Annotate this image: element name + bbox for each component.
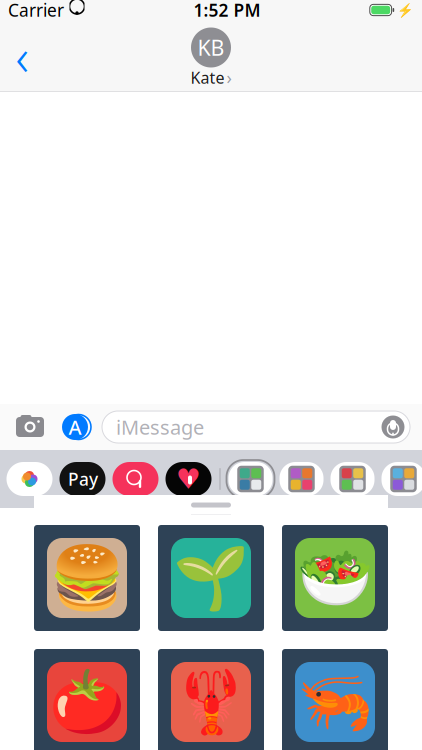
button[interactable]: Shrimp sticker bbox=[282, 649, 388, 750]
staticText: 🥗 bbox=[297, 543, 373, 613]
staticText: 1:52 PM bbox=[193, 0, 260, 21]
button[interactable]: Lobster sticker bbox=[158, 649, 264, 750]
button[interactable]: Kate bbox=[190, 69, 231, 85]
button[interactable]: Peas sticker bbox=[158, 525, 264, 631]
button[interactable]: Sticker pack bbox=[381, 462, 422, 496]
staticText: 🍔 bbox=[49, 543, 125, 613]
staticText: 🍅 bbox=[49, 667, 125, 737]
button[interactable]: App Store bbox=[58, 410, 92, 444]
button[interactable]: Burger sticker bbox=[34, 525, 140, 631]
staticText: ⚡ bbox=[397, 2, 414, 18]
staticText: › bbox=[226, 66, 231, 89]
staticText: ‹ bbox=[15, 22, 28, 90]
staticText: A bbox=[68, 414, 81, 440]
button[interactable] bbox=[59, 462, 105, 496]
staticText: Carrier bbox=[8, 0, 64, 21]
staticText: Pay bbox=[68, 467, 98, 490]
button[interactable]: Salad sticker bbox=[282, 525, 388, 631]
button[interactable] bbox=[112, 462, 158, 496]
staticText: ♥ bbox=[176, 463, 201, 495]
button[interactable]: Sticker pack bbox=[228, 462, 272, 496]
staticText: 🌱 bbox=[173, 543, 249, 613]
button[interactable]: ♥ bbox=[165, 462, 211, 496]
button[interactable]: Back bbox=[0, 34, 44, 78]
button[interactable]: Tomato sticker bbox=[34, 649, 140, 750]
staticText: 🦞 bbox=[173, 667, 249, 737]
button[interactable]: Sticker pack bbox=[330, 462, 374, 496]
button[interactable]: Camera bbox=[12, 410, 48, 444]
button[interactable]: KB bbox=[189, 26, 233, 68]
staticText: iMessage bbox=[116, 414, 204, 440]
button[interactable]: iMessage bbox=[102, 411, 410, 443]
button[interactable] bbox=[6, 462, 52, 496]
staticText: KB bbox=[197, 33, 224, 62]
staticText: 🦐 bbox=[297, 667, 373, 737]
button[interactable]: Sticker pack bbox=[279, 462, 323, 496]
staticText: Kate bbox=[190, 67, 224, 88]
